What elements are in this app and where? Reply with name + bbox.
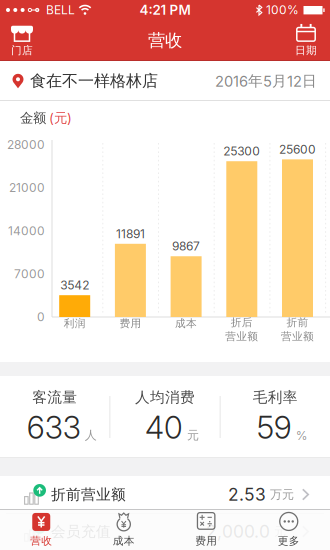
staticText: 2.53: [228, 484, 266, 505]
staticText: 3542: [60, 278, 89, 292]
staticText: 费用: [195, 534, 217, 547]
staticText: 人: [85, 428, 97, 443]
button[interactable]: 更多: [247, 509, 330, 550]
staticText: 成本: [175, 317, 197, 330]
staticText: 0: [37, 310, 45, 324]
staticText: 金额: [20, 110, 46, 126]
staticText: %: [296, 428, 308, 443]
staticText: 2,000.0: [206, 521, 270, 542]
staticText: BELL: [46, 3, 75, 17]
staticText: 折前: [286, 316, 308, 329]
staticText: 折后: [231, 316, 253, 329]
staticText: 元: [187, 428, 199, 443]
staticText: 25600: [279, 142, 316, 156]
staticText: 营收: [30, 534, 52, 547]
button[interactable]: 成本: [82, 509, 165, 550]
staticText: 633: [27, 409, 81, 446]
staticText: 食在不一样格林店: [30, 71, 158, 91]
button[interactable]: 折前营业额: [0, 476, 330, 513]
staticText: 40: [145, 409, 183, 446]
staticText: 毛利率: [253, 388, 298, 406]
staticText: 元: [274, 524, 286, 539]
staticText: 门店: [11, 44, 33, 57]
staticText: 营业额: [225, 330, 258, 343]
staticText: 折前营业额: [51, 485, 126, 503]
staticText: 费用: [119, 317, 141, 330]
staticText: 万元: [270, 487, 294, 502]
staticText: 25300: [223, 144, 260, 158]
button[interactable]: 门店: [0, 21, 44, 59]
staticText: 更多: [278, 534, 300, 547]
staticText: 客流量: [32, 388, 77, 406]
staticText: 100%: [266, 3, 299, 17]
button[interactable]: 2016年5月12日: [215, 72, 317, 90]
button[interactable]: 费用: [165, 509, 247, 550]
staticText: 7000: [14, 267, 45, 281]
button[interactable]: 会员充值: [0, 513, 330, 550]
staticText: 9867: [172, 239, 200, 253]
staticText: 21000: [9, 181, 45, 195]
staticText: (元): [49, 110, 72, 126]
staticText: 利润: [64, 317, 86, 330]
staticText: 14000: [8, 224, 45, 238]
staticText: 会员充值: [51, 522, 111, 540]
staticText: 11891: [116, 227, 145, 241]
staticText: 人均消费: [135, 388, 195, 406]
staticText: 28000: [7, 137, 45, 152]
staticText: 4:21 PM: [139, 2, 190, 18]
staticText: 营业额: [281, 330, 314, 343]
staticText: 日期: [295, 44, 317, 57]
staticText: 2016年5月12日: [215, 72, 317, 90]
button[interactable]: 营收: [0, 509, 82, 550]
staticText: 成本: [113, 534, 135, 547]
staticText: 营收: [148, 30, 182, 51]
staticText: 59: [257, 409, 292, 446]
button[interactable]: 日期: [284, 21, 328, 59]
